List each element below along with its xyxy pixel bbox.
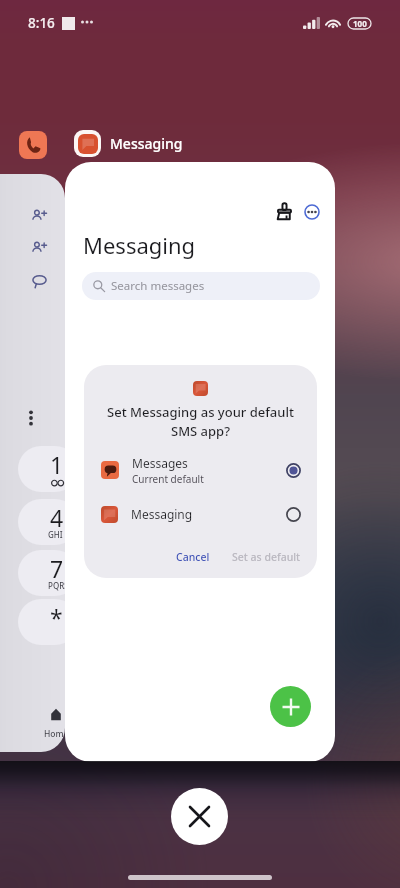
staticText: GHI (48, 529, 63, 540)
button[interactable]: Messaging (84, 498, 317, 530)
button[interactable]: 7 (18, 550, 65, 596)
button[interactable]: New conversation (270, 686, 311, 727)
staticText: 1 (50, 449, 64, 480)
button[interactable]: Set as default (223, 546, 310, 568)
staticText: 7 (50, 553, 64, 584)
button[interactable]: Messaging (74, 130, 183, 157)
button[interactable]: 4 (18, 499, 65, 545)
staticText: PQRS (48, 580, 65, 591)
button[interactable]: Close all (171, 788, 228, 845)
staticText: Messaging (131, 506, 193, 522)
staticText: Messaging (110, 134, 183, 153)
staticText: Search messages (111, 278, 205, 294)
staticText: Set Messaging as your default SMS app? (84, 403, 317, 440)
staticText: Messaging (83, 230, 196, 260)
button[interactable]: Cancel (167, 546, 219, 568)
button[interactable]: Messages (84, 452, 317, 488)
button[interactable]: 1 (18, 446, 65, 492)
staticText: Set as default (232, 550, 301, 564)
button[interactable]: * (18, 599, 65, 645)
button[interactable]: Clean up (269, 196, 299, 226)
staticText: Home (44, 728, 65, 740)
staticText: Messages (132, 455, 188, 471)
staticText: * (50, 602, 63, 633)
staticText: 8:16 (28, 14, 55, 32)
staticText: 100 (353, 18, 367, 29)
staticText: Cancel (176, 550, 210, 564)
staticText: Current default (132, 472, 204, 486)
button[interactable]: More options (297, 197, 327, 227)
button[interactable]: Search messages (82, 272, 320, 300)
staticText: 4 (50, 502, 64, 533)
